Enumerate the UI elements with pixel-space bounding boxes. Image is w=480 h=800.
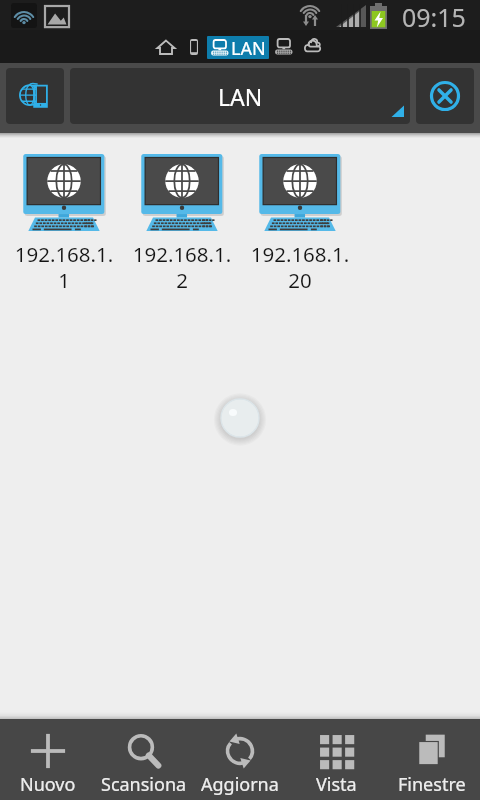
staticText: Finestre bbox=[398, 772, 466, 797]
button[interactable]: Aggiorna bbox=[192, 719, 288, 800]
button[interactable]: 192.168.1. 20 bbox=[241, 154, 359, 294]
staticText: 09:15 bbox=[402, 0, 466, 29]
staticText: LAN bbox=[218, 81, 263, 112]
button[interactable]: LAN bbox=[210, 36, 266, 59]
staticText: 192.168.1. 20 bbox=[241, 240, 359, 294]
staticText: Nuovo bbox=[20, 772, 76, 797]
button[interactable]: Device bbox=[181, 34, 207, 60]
staticText: 192.168.1. 2 bbox=[123, 240, 241, 294]
other: Server bbox=[274, 37, 294, 57]
button[interactable]: Browser bbox=[6, 68, 64, 124]
button[interactable]: LAN bbox=[70, 68, 410, 124]
button[interactable]: Cloud bbox=[299, 34, 329, 60]
button[interactable]: 192.168.1. 2 bbox=[123, 154, 241, 294]
staticText: LAN bbox=[231, 36, 266, 58]
button[interactable]: Close bbox=[416, 68, 474, 124]
button[interactable]: Finestre bbox=[384, 719, 480, 800]
staticText: Scansiona bbox=[101, 772, 187, 797]
other: Home bbox=[156, 37, 176, 57]
staticText: Aggiorna bbox=[201, 772, 279, 797]
button[interactable]: Nuovo bbox=[0, 719, 96, 800]
other: Device bbox=[184, 37, 204, 57]
staticText: 192.168.1. 1 bbox=[5, 240, 123, 294]
button[interactable]: Server bbox=[269, 34, 299, 60]
other: Cloud bbox=[303, 36, 325, 58]
staticText: Vista bbox=[316, 772, 357, 797]
button[interactable]: Home bbox=[151, 34, 181, 60]
button[interactable]: Scansiona bbox=[96, 719, 192, 800]
button[interactable]: 192.168.1. 1 bbox=[5, 154, 123, 294]
button[interactable]: Vista bbox=[288, 719, 384, 800]
